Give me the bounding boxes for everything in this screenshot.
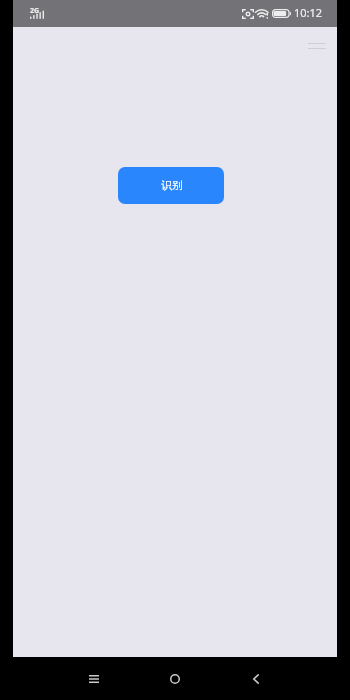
button[interactable]: More options xyxy=(300,33,334,59)
staticText: 10:12 xyxy=(294,5,323,20)
staticText: 2G xyxy=(30,6,40,16)
button[interactable]: Back xyxy=(228,657,284,700)
button[interactable]: Recent apps xyxy=(66,657,122,700)
staticText: 识别 xyxy=(161,179,183,193)
button[interactable]: Home xyxy=(147,657,203,700)
button[interactable]: 识别 xyxy=(118,167,224,204)
